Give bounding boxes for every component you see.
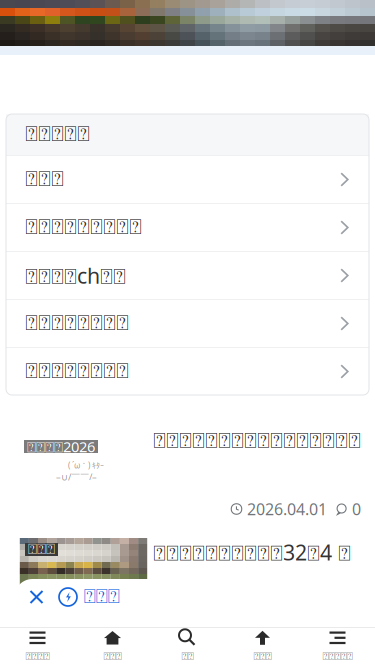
button[interactable]: ⍰⍰⍰ <box>0 538 375 585</box>
button[interactable]: ⍰⍰⍰ <box>75 628 150 667</box>
button[interactable]: ⍰⍰⍰⍰ <box>0 628 75 667</box>
button[interactable]: ⍰⍰⍰⍰2026 <box>0 431 375 516</box>
staticText: ⍰⍰⍰⍰⍰⍰⍰⍰ <box>25 361 129 382</box>
staticText: –∪/￣￣/– <box>56 471 97 483</box>
staticText: 0 <box>352 498 361 520</box>
staticText: ⍰⍰⍰⍰⍰ <box>25 124 90 145</box>
button[interactable]: Close <box>14 579 58 615</box>
staticText: ⍰⍰⍰ <box>253 651 271 662</box>
button[interactable]: ⍰⍰⍰ <box>225 628 300 667</box>
staticText: ⍰⍰⍰⍰2026 <box>27 437 95 456</box>
staticText: 2026.04.01 <box>247 498 327 520</box>
button[interactable]: ⍰⍰⍰ <box>58 579 119 615</box>
button[interactable]: ⍰⍰⍰ <box>6 156 369 203</box>
staticText: ⍰⍰⍰⍰⍰⍰⍰⍰⍰⍰⍰⍰⍰⍰⍰⍰ <box>153 431 361 452</box>
button[interactable]: ⍰⍰ <box>150 628 225 667</box>
button[interactable]: ⍰⍰⍰⍰ch⍰⍰ <box>6 252 369 299</box>
staticText: ⍰⍰⍰ <box>28 542 55 557</box>
staticText: ( ´ω｀) ｷﾀｰ <box>68 460 104 471</box>
staticText: ⍰⍰⍰ <box>25 169 64 190</box>
staticText: ⍰⍰⍰ <box>103 651 121 662</box>
staticText: ⍰⍰⍰⍰⍰⍰⍰⍰⍰⍰32⍰4 ⍰ <box>153 538 351 566</box>
staticText: ⍰⍰⍰⍰⍰⍰⍰⍰ <box>25 313 129 334</box>
staticText: ⍰⍰⍰⍰⍰⍰⍰⍰⍰ <box>25 217 142 238</box>
staticText: ⍰⍰⍰⍰ch⍰⍰ <box>25 261 126 290</box>
staticText: ⍰⍰⍰⍰ <box>25 651 49 662</box>
staticText: ⍰⍰ <box>181 651 193 662</box>
button[interactable]: ⍰⍰⍰⍰⍰⍰⍰⍰⍰ <box>6 204 369 251</box>
button[interactable]: ⍰⍰⍰⍰⍰ <box>300 628 375 667</box>
staticText: ⍰⍰⍰ <box>83 587 119 607</box>
staticText: ⍰⍰⍰⍰⍰ <box>322 651 352 662</box>
button[interactable]: ⍰⍰⍰⍰⍰⍰⍰⍰ <box>6 300 369 347</box>
button[interactable]: ⍰⍰⍰⍰⍰⍰⍰⍰ <box>6 348 369 395</box>
